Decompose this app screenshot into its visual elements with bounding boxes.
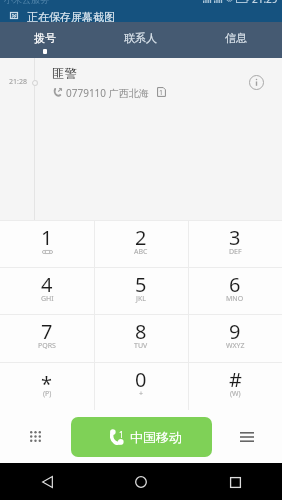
button[interactable]: 5 <box>94 267 188 314</box>
staticText: GHI <box>41 294 54 304</box>
staticText: ABC <box>134 247 148 257</box>
button[interactable]: 拨号 <box>0 22 94 58</box>
staticText: 1 <box>119 429 124 440</box>
staticText: 6 <box>229 271 241 298</box>
button[interactable]: 21:28 <box>0 58 282 106</box>
staticText: (W) <box>230 389 241 399</box>
staticText: 匪警 <box>52 66 77 82</box>
button[interactable]: 0 <box>94 362 188 410</box>
button[interactable]: 2 <box>94 220 188 267</box>
staticText: 中国移动 <box>130 429 182 445</box>
staticText: 2 <box>135 224 147 251</box>
staticText: MNO <box>226 294 244 304</box>
button[interactable]: 返回 <box>0 463 94 500</box>
staticText: 4 <box>41 271 53 298</box>
staticText: 21:29 <box>252 0 278 6</box>
staticText: JKL <box>136 294 146 304</box>
button[interactable]: 主屏幕 <box>94 463 188 500</box>
staticText: 联系人 <box>124 31 157 45</box>
button[interactable]: # <box>188 362 282 410</box>
button[interactable]: 1 <box>0 220 94 267</box>
button[interactable]: 8 <box>94 314 188 362</box>
button[interactable]: 最近使用的应用 <box>188 463 282 500</box>
button[interactable]: 拨号键盘 <box>12 410 59 463</box>
button[interactable]: 更多选项 <box>223 410 270 463</box>
staticText: * <box>41 370 53 397</box>
staticText: 拨号 <box>34 31 56 45</box>
button[interactable]: 1 <box>71 417 212 457</box>
staticText: WXYZ <box>226 341 245 351</box>
button[interactable]: 7 <box>0 314 94 362</box>
staticText: DEF <box>229 247 242 257</box>
button[interactable]: 3 <box>188 220 282 267</box>
staticText: 1 <box>159 88 164 98</box>
staticText: 0 <box>135 366 147 393</box>
staticText: + <box>139 389 144 399</box>
staticText: 0779110 广西北海 <box>66 86 149 100</box>
staticText: 9 <box>229 318 241 345</box>
staticText: 1 <box>41 224 53 251</box>
staticText: 3 <box>229 224 241 251</box>
staticText: TUV <box>134 341 148 351</box>
staticText: 5 <box>135 271 147 298</box>
button[interactable]: 6 <box>188 267 282 314</box>
staticText: 小米云服务 <box>4 0 49 5</box>
button[interactable]: 9 <box>188 314 282 362</box>
button[interactable]: * <box>0 362 94 410</box>
button[interactable]: 详细信息 <box>239 58 273 106</box>
staticText: 信息 <box>225 31 247 45</box>
button[interactable]: 4 <box>0 267 94 314</box>
staticText: 21:28 <box>9 77 27 87</box>
staticText: # <box>229 366 242 393</box>
staticText: PQRS <box>38 341 56 351</box>
button[interactable]: 联系人 <box>94 22 188 58</box>
staticText: 8 <box>135 318 147 345</box>
staticText: (P) <box>43 389 52 399</box>
button[interactable]: 信息 <box>188 22 282 58</box>
staticText: 7 <box>41 318 53 345</box>
staticText: 正在保存屏幕截图 <box>27 10 115 24</box>
